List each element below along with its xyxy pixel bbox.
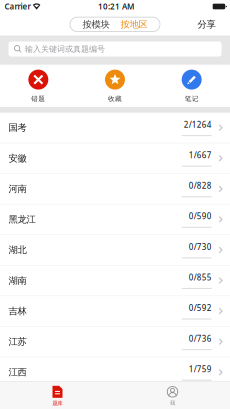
staticText: 吉林 xyxy=(8,305,26,317)
staticText: 错题 xyxy=(31,95,45,103)
staticText: 1/759 xyxy=(189,364,212,374)
staticText: 黑龙江 xyxy=(8,214,35,225)
staticText: Carrier xyxy=(5,1,31,12)
staticText: 0/736 xyxy=(189,333,212,344)
staticText: 0/730 xyxy=(189,241,212,252)
button[interactable]: 我 xyxy=(115,381,230,409)
button[interactable]: 按地区 xyxy=(120,17,147,31)
button[interactable]: 湖北 xyxy=(0,235,230,266)
staticText: 我 xyxy=(170,400,175,406)
staticText: 国考 xyxy=(8,122,26,133)
staticText: 笔记 xyxy=(185,95,199,103)
staticText: 湖北 xyxy=(8,244,26,256)
button[interactable]: 江西 xyxy=(0,357,230,388)
staticText: 河南 xyxy=(8,183,26,195)
button[interactable]: 错题 xyxy=(0,65,77,107)
staticText: 按模块 xyxy=(82,19,109,30)
staticText: 江苏 xyxy=(8,336,26,347)
staticText: 按地区 xyxy=(120,19,147,30)
button[interactable]: 按模块 xyxy=(82,17,109,31)
staticText: 0/590 xyxy=(189,211,212,221)
staticText: 输入关键词或真题编号 xyxy=(25,44,105,54)
staticText: 1/667 xyxy=(189,150,212,160)
button[interactable]: 河南 xyxy=(0,174,230,204)
button[interactable]: 吉林 xyxy=(0,296,230,327)
staticText: 安徽 xyxy=(8,152,26,164)
staticText: 江西 xyxy=(8,366,26,378)
button[interactable]: 题库 xyxy=(0,381,115,409)
button[interactable]: 江苏 xyxy=(0,327,230,357)
button[interactable]: 输入关键词或真题编号 xyxy=(8,41,221,56)
button[interactable]: 收藏 xyxy=(77,65,153,107)
staticText: 0/855 xyxy=(189,272,212,283)
staticText: 0/592 xyxy=(189,303,212,313)
button[interactable]: 安徽 xyxy=(0,143,230,174)
staticText: 分享 xyxy=(197,19,215,30)
button[interactable]: 黑龙江 xyxy=(0,204,230,235)
staticText: 0/828 xyxy=(189,180,212,191)
staticText: 题库 xyxy=(52,400,62,407)
button[interactable]: 国考 xyxy=(0,113,230,143)
button[interactable]: 湖南 xyxy=(0,266,230,296)
staticText: 2/1264 xyxy=(184,119,212,130)
button[interactable]: 笔记 xyxy=(153,65,230,107)
staticText: 10:21 AM xyxy=(98,1,134,12)
staticText: 湖南 xyxy=(8,275,26,286)
button[interactable]: 分享 xyxy=(192,15,220,34)
staticText: 收藏 xyxy=(108,95,122,103)
